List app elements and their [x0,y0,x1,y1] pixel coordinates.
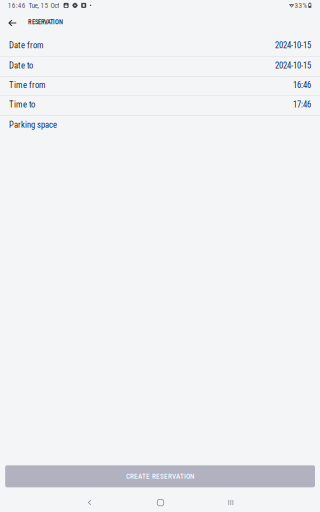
staticText: 16:46 [8,1,26,10]
button[interactable]: Back [73,491,107,512]
staticText: Tue, 15 Oct [28,1,59,10]
button[interactable]: CREATE RESERVATION [5,465,315,487]
button[interactable]: Date to [0,57,320,76]
button[interactable]: Time from [0,77,320,95]
staticText: Date to [9,60,33,71]
staticText: CREATE RESERVATION [126,472,194,480]
button[interactable]: Home [143,492,177,512]
button[interactable]: Recent apps [214,491,248,512]
button[interactable]: Time to [0,96,320,115]
staticText: Parking space [9,120,57,130]
staticText: Time to [9,99,35,110]
staticText: 2024-10-15 [275,60,311,71]
staticText: 33% [295,1,308,10]
staticText: RESERVATION [28,18,63,26]
button[interactable]: Parking space [0,116,320,136]
staticText: 2024-10-15 [275,40,311,50]
staticText: 16:46 [293,80,311,90]
staticText: 17:46 [293,99,311,110]
staticText: Date from [9,40,44,50]
button[interactable]: Back [1,12,24,34]
button[interactable]: Date from [0,36,320,56]
staticText: Time from [9,80,46,90]
